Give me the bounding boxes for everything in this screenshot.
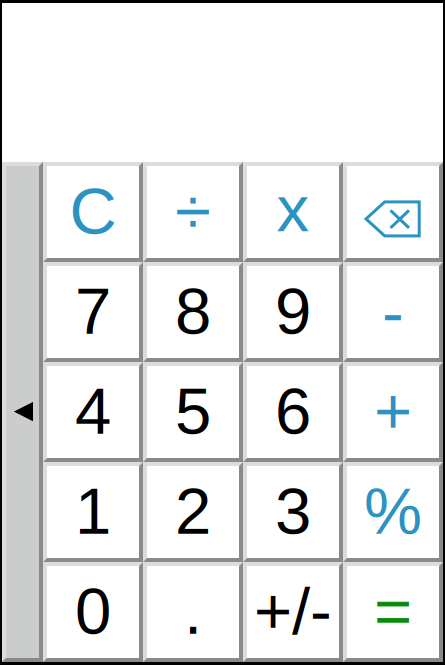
button[interactable]: C [43,162,143,262]
staticText: 2 [175,474,211,547]
staticText: = [374,574,412,647]
staticText: - [382,276,404,349]
staticText: 6 [275,374,311,447]
staticText: % [364,474,422,547]
button[interactable]: 2 [143,462,243,562]
staticText: 7 [75,274,111,347]
button[interactable]: 6 [243,362,343,462]
staticText: 0 [75,574,111,647]
staticText: ÷ [175,174,211,247]
button[interactable]: + [343,362,443,462]
button[interactable]: = [343,562,443,662]
button[interactable]: Collapse keypad [2,162,43,662]
staticText: 8 [175,274,211,347]
button[interactable]: 7 [43,262,143,362]
button[interactable]: . [143,562,243,662]
staticText: . [184,574,202,647]
button[interactable]: 0 [43,562,143,662]
staticText: 4 [75,374,111,447]
button[interactable]: 4 [43,362,143,462]
staticText: 9 [275,274,311,347]
button[interactable]: Backspace [343,162,443,262]
button[interactable]: 5 [143,362,243,462]
button[interactable]: +/- [243,562,343,662]
button[interactable]: x [243,162,343,262]
button[interactable]: ÷ [143,162,243,262]
staticText: +/- [254,574,332,647]
staticText: 3 [275,474,311,547]
staticText: + [374,374,412,447]
staticText: C [69,174,116,247]
button[interactable]: - [343,262,443,362]
button[interactable]: 3 [243,462,343,562]
button[interactable]: 8 [143,262,243,362]
staticText: 5 [175,374,211,447]
button[interactable]: 9 [243,262,343,362]
button[interactable]: 1 [43,462,143,562]
button[interactable]: % [343,462,443,562]
staticText: 1 [75,474,111,547]
staticText: x [276,172,309,245]
